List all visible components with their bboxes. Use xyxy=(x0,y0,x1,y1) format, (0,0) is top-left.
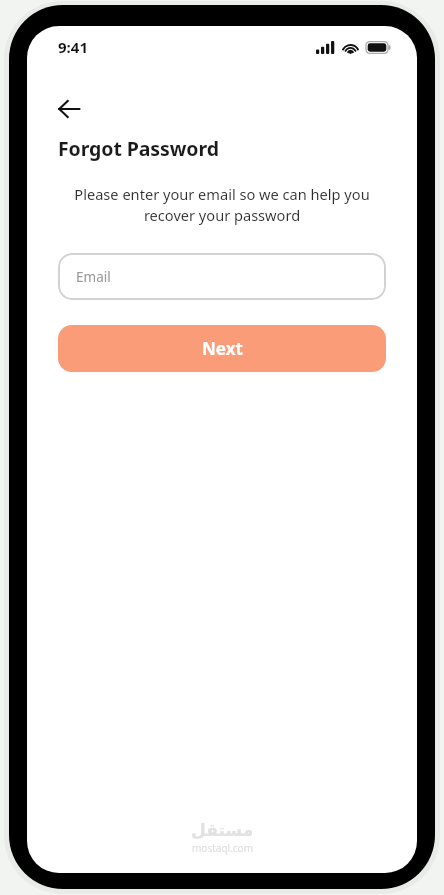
staticText: 9:41 xyxy=(58,37,88,57)
staticText: Email xyxy=(76,268,111,286)
button[interactable]: Email xyxy=(58,253,386,300)
staticText: Forgot Password xyxy=(58,135,219,162)
staticText: Please enter your email so we can help y… xyxy=(57,184,387,226)
staticText: Next xyxy=(202,337,243,360)
button[interactable]: Back xyxy=(49,89,89,129)
staticText: مستقل xyxy=(191,820,254,840)
button[interactable]: Next xyxy=(58,325,386,372)
staticText: mostaql.com xyxy=(192,841,254,855)
